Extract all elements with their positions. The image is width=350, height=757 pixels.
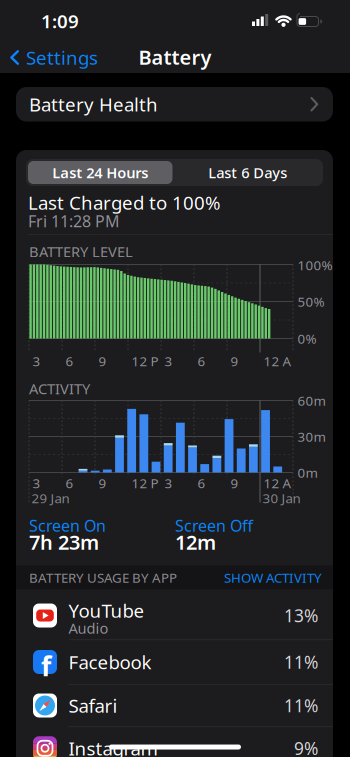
staticText: 12m [175,529,216,555]
staticText: ACTIVITY [29,379,90,398]
staticText: Last 6 Days [208,163,287,182]
staticText: Settings [26,45,98,70]
staticText: 60m [297,392,325,409]
staticText: Battery [138,44,211,70]
button[interactable]: Safari [16,684,333,726]
staticText: 12 A [263,474,291,492]
staticText: 6 [197,352,205,370]
staticText: 12 P [131,352,158,370]
button[interactable]: Settings [10,46,130,68]
button[interactable]: Last 24 Hours [28,161,172,184]
staticText: Last 24 Hours [52,163,148,182]
staticText: 11% [284,694,318,717]
staticText: SHOW ACTIVITY [224,569,322,586]
staticText: 12 A [263,352,291,370]
staticText: Audio [68,618,108,638]
button[interactable]: Battery Health [16,87,333,121]
button[interactable]: YouTube [16,591,333,639]
staticText: 3 [164,352,172,370]
staticText: 30 Jan [262,489,300,507]
staticText: 50% [297,293,324,310]
staticText: 100% [297,256,332,274]
staticText: 7h 23m [29,529,99,555]
staticText: Screen Off [175,515,253,536]
staticText: 9 [230,474,238,492]
staticText: 3 [32,474,40,492]
staticText: 9 [230,352,238,370]
staticText: Safari [68,693,117,718]
staticText: 3 [164,474,172,492]
staticText: BATTERY LEVEL [29,242,133,261]
staticText: 9 [98,352,106,370]
staticText: 0m [297,464,317,481]
staticText: 6 [197,474,205,492]
staticText: 3 [32,352,40,370]
button[interactable]: Instagram [16,726,333,757]
staticText: BATTERY USAGE BY APP [29,569,177,586]
staticText: 6 [65,352,73,370]
staticText: Instagram [68,736,157,757]
staticText: 9% [294,737,318,757]
staticText: Facebook [68,650,151,674]
staticText: 30m [297,428,325,445]
staticText: 0% [297,330,316,347]
button[interactable]: SHOW ACTIVITY [192,569,322,585]
staticText: Screen On [29,515,106,536]
staticText: 12 P [131,474,158,492]
staticText: 6 [65,474,73,492]
staticText: Battery Health [29,92,158,117]
staticText: Last Charged to 100% [28,190,221,215]
button[interactable]: f [16,639,333,684]
staticText: 1:09 [41,9,79,33]
staticText: Fri 11:28 PM [28,210,120,232]
staticText: 11% [284,650,318,673]
staticText: YouTube [68,598,144,623]
staticText: 29 Jan [31,489,69,507]
staticText: f [41,648,51,684]
staticText: 13% [284,604,318,627]
staticText: 9 [98,474,106,492]
button[interactable]: Last 6 Days [174,161,321,184]
